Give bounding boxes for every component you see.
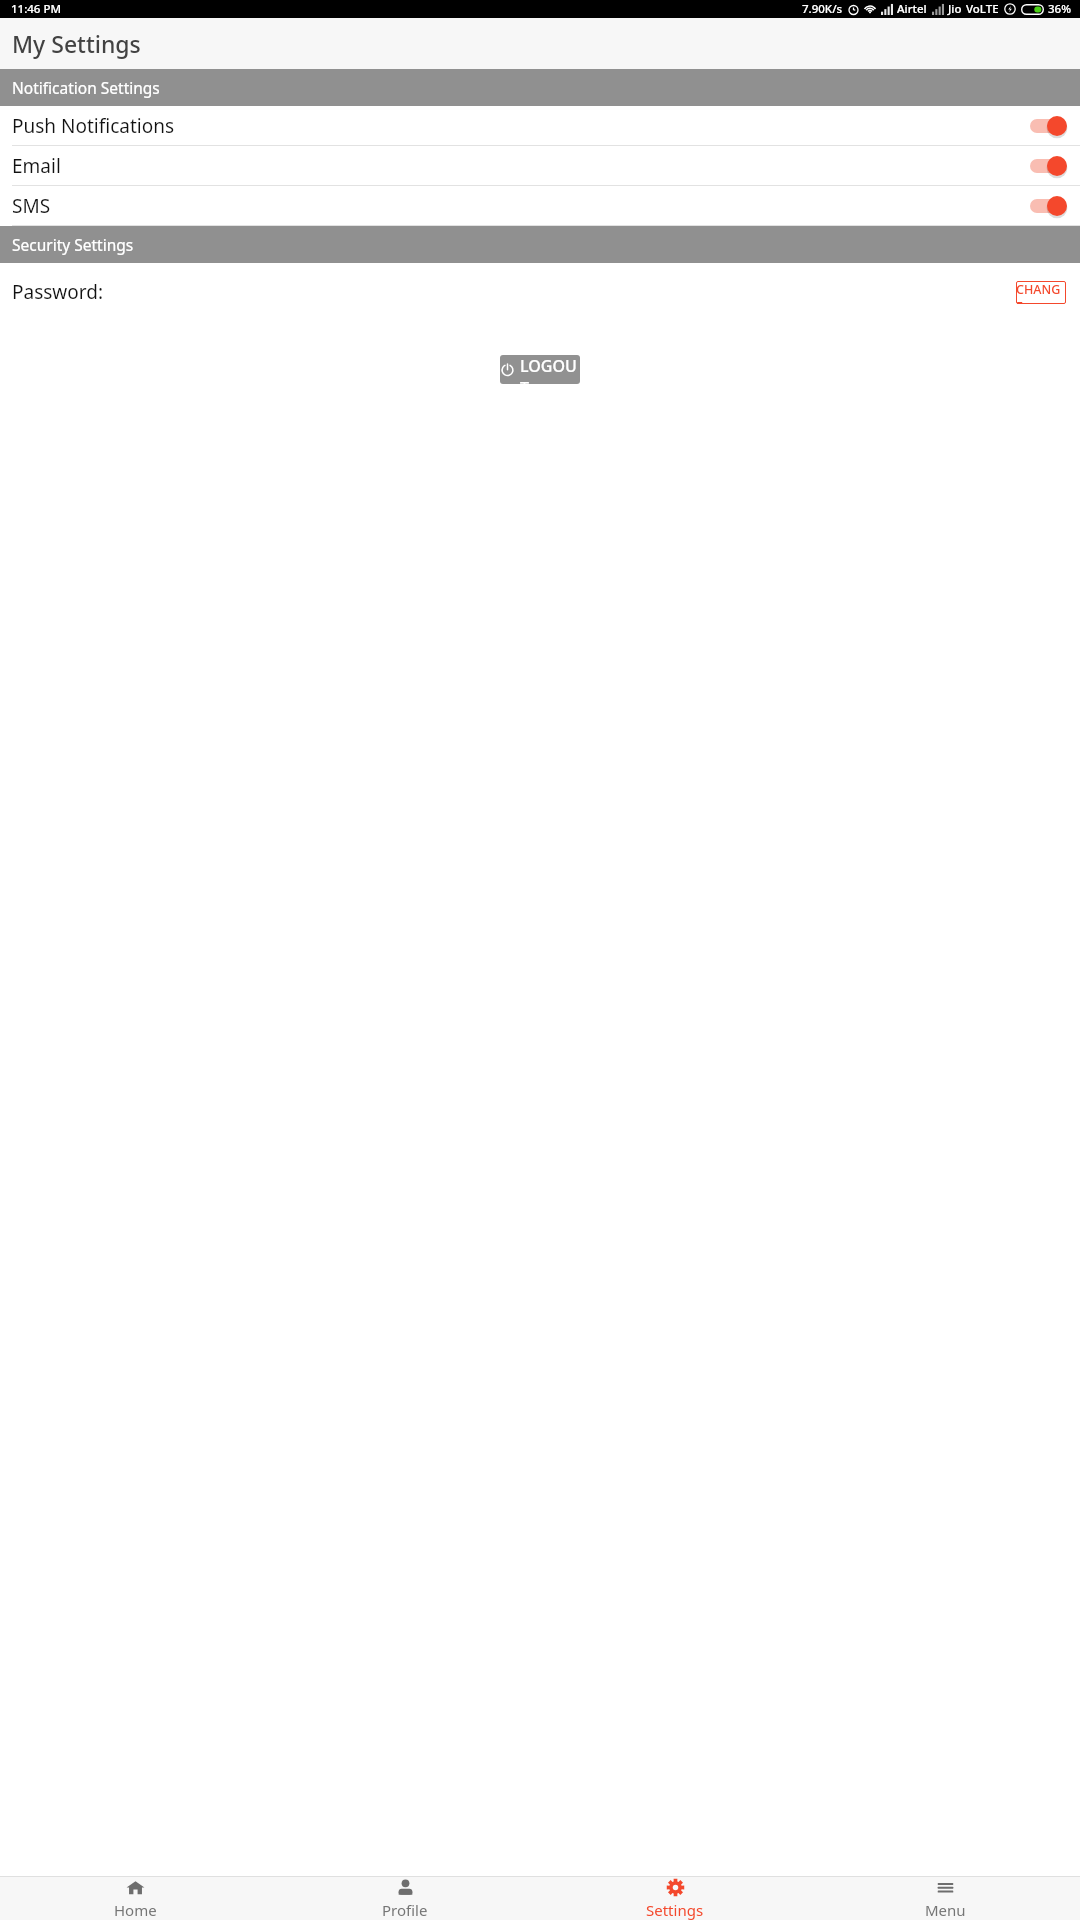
button[interactable]: SMS bbox=[0, 186, 1080, 226]
staticText: Menu bbox=[925, 1900, 966, 1920]
staticText: 11:46 PM bbox=[11, 1, 62, 17]
staticText: Security Settings bbox=[12, 234, 134, 255]
button[interactable]: Push Notifications bbox=[0, 106, 1080, 146]
staticText: CHANGE bbox=[1016, 281, 1066, 304]
staticText: VoLTE bbox=[966, 1, 999, 17]
staticText: Notification Settings bbox=[12, 77, 160, 98]
staticText: 7.90K/s bbox=[802, 1, 843, 17]
staticText: SMS bbox=[12, 193, 51, 219]
staticText: Profile bbox=[382, 1900, 428, 1920]
staticText: Home bbox=[114, 1900, 157, 1920]
button[interactable]: Profile bbox=[270, 1878, 540, 1920]
button[interactable]: Home bbox=[0, 1878, 270, 1920]
button[interactable]: CHANGE bbox=[1016, 281, 1066, 304]
button[interactable]: Settings bbox=[540, 1878, 810, 1920]
staticText: Airtel bbox=[897, 1, 927, 17]
staticText: Password: bbox=[12, 279, 104, 305]
staticText: Settings bbox=[646, 1900, 704, 1920]
staticText: Jio bbox=[948, 1, 962, 17]
staticText: Push Notifications bbox=[12, 113, 175, 139]
staticText: 36% bbox=[1048, 1, 1071, 17]
button[interactable]: Menu bbox=[810, 1878, 1080, 1920]
staticText: LOGOUT bbox=[520, 355, 580, 384]
staticText: My Settings bbox=[12, 28, 141, 59]
button[interactable]: Email bbox=[0, 146, 1080, 186]
staticText: Email bbox=[12, 153, 61, 179]
button[interactable]: LOGOUT bbox=[500, 355, 580, 384]
